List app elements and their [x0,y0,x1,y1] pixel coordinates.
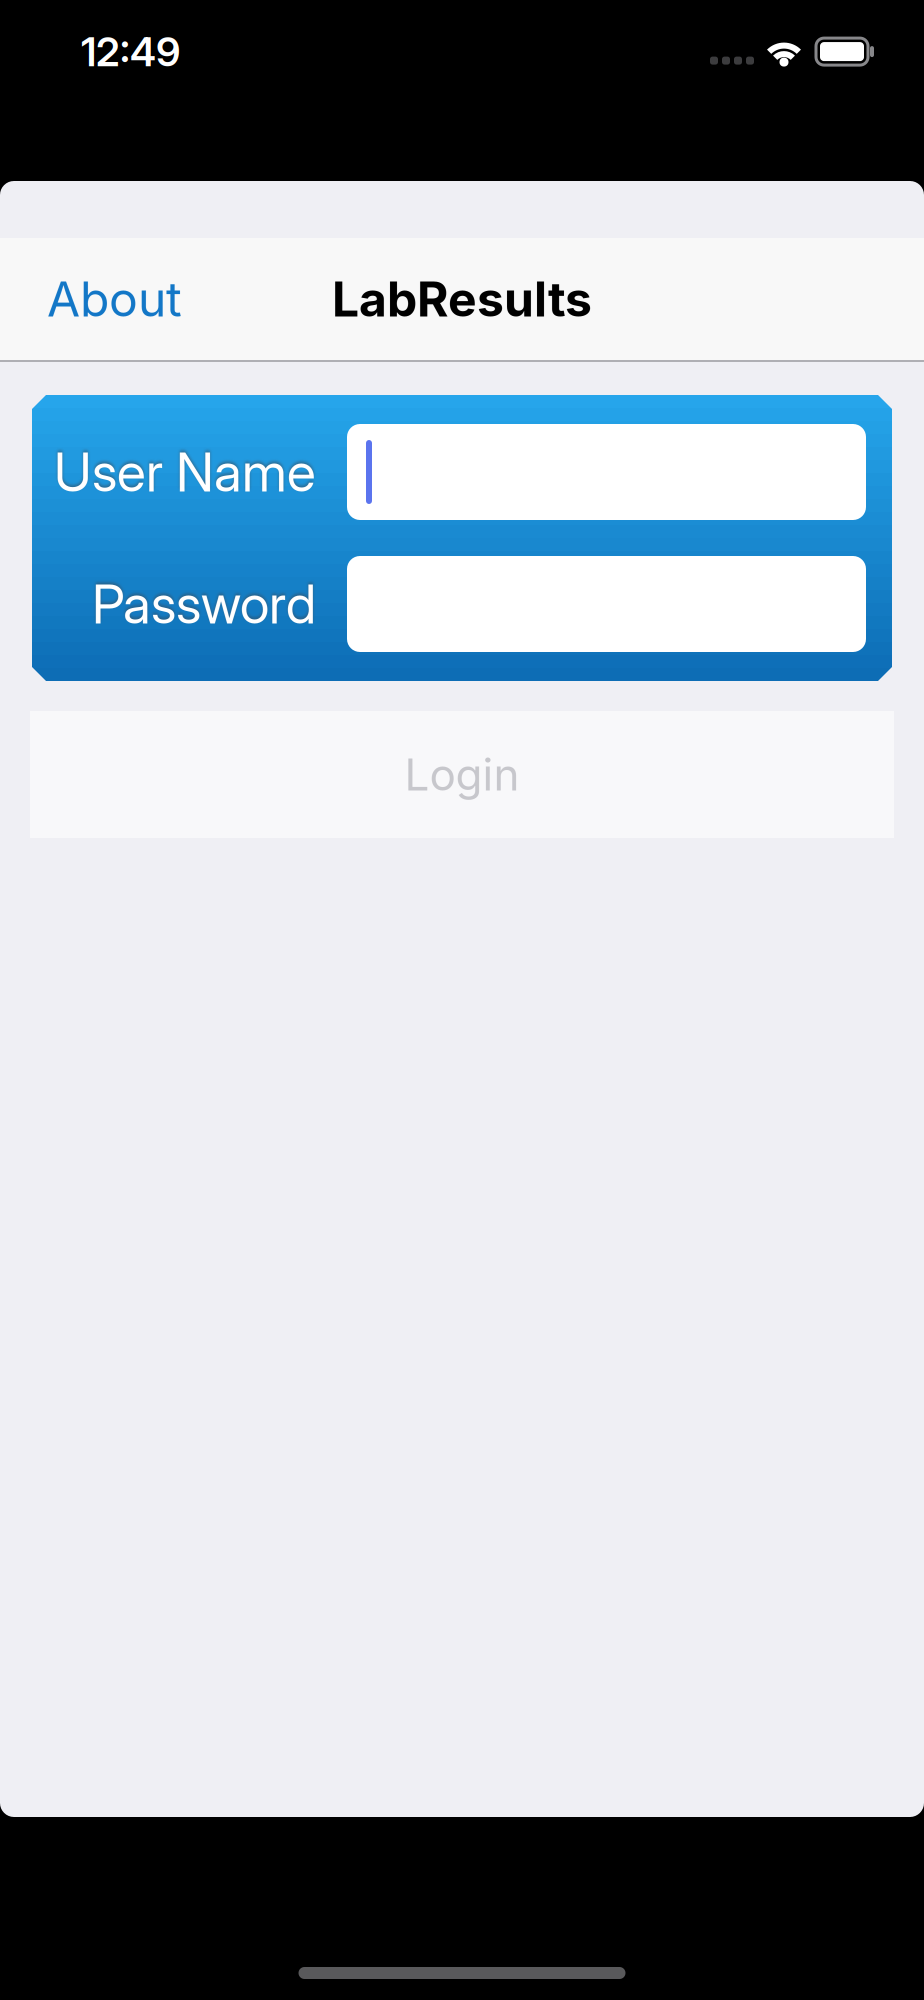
button[interactable]: About [47,271,182,327]
staticText: 12:49 [81,28,180,75]
staticText: Password [92,572,316,636]
staticText: Login [404,748,519,800]
staticText: LabResults [332,271,592,327]
button[interactable]: Password text field [347,556,866,652]
button[interactable]: Login [30,711,894,838]
button[interactable]: User Name text field [347,424,866,520]
staticText: User Name [54,440,316,504]
staticText: About [47,271,182,327]
